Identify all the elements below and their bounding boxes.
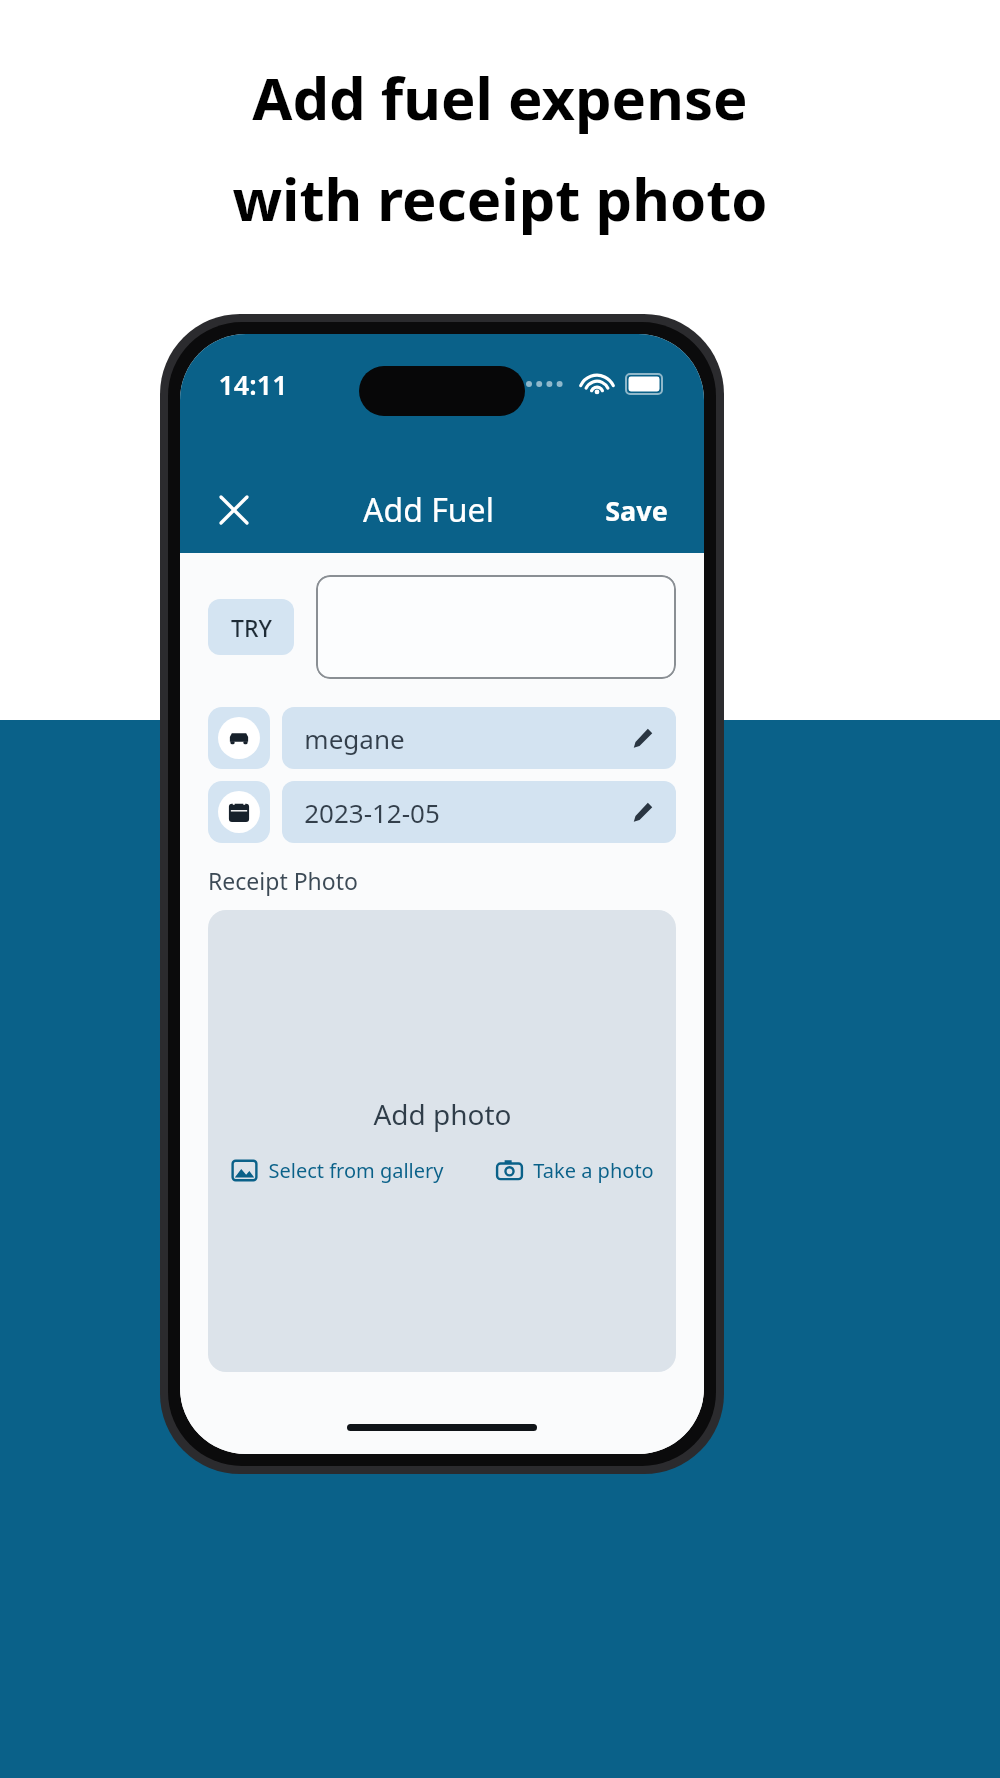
staticText: Add photo [373,1095,512,1133]
button[interactable]: Close [208,484,260,536]
staticText: Take a photo [533,1157,654,1184]
staticText: megane [304,721,405,756]
staticText: Save [605,492,668,529]
staticText: TRY [231,612,272,643]
button[interactable] [316,575,676,679]
staticText: Add Fuel [363,488,494,532]
button[interactable]: Save [597,484,676,537]
button[interactable]: Take a photo [492,1153,658,1188]
staticText: Select from gallery [268,1157,444,1184]
button[interactable]: 2023-12-05 [208,781,676,843]
staticText: with receipt photo [232,159,768,238]
button[interactable]: megane [208,707,676,769]
staticText: Receipt Photo [208,865,358,896]
staticText: 14:11 [218,366,288,403]
button[interactable]: Add photo [208,910,676,1372]
staticText: Add fuel expense [252,58,748,137]
button[interactable]: Select from gallery [227,1153,448,1188]
staticText: 2023-12-05 [304,795,440,830]
button[interactable]: TRY [208,599,294,655]
